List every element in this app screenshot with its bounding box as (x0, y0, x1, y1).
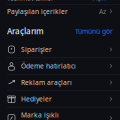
staticText: Hediyeler (21, 95, 52, 103)
staticText: Marka işıklı (21, 110, 59, 119)
staticText: Açık (93, 0, 106, 2)
button[interactable]: Siparişler (0, 41, 120, 57)
staticText: Teslimat takibi (7, 0, 53, 2)
button[interactable]: Ödeme hatırlatıcı (0, 58, 120, 74)
staticText: Paylaşılan içerikler (7, 7, 68, 16)
staticText: Araçlarım (7, 26, 44, 36)
staticText: Az (99, 7, 106, 16)
staticText: Reklam araçları (21, 78, 72, 87)
button[interactable]: Tümünü gör (75, 27, 113, 36)
button[interactable]: Marka işıklı (0, 107, 120, 120)
staticText: Siparişler (21, 45, 52, 54)
button[interactable]: Paylaşılan içerikler (0, 5, 120, 18)
button[interactable]: Reklam araçları (0, 74, 120, 90)
button[interactable]: Teslimat takibi (0, 0, 120, 4)
button[interactable]: Hediyeler (0, 91, 120, 107)
staticText: Tümünü gör (75, 27, 113, 36)
staticText: Ödeme hatırlatıcı (21, 62, 76, 70)
